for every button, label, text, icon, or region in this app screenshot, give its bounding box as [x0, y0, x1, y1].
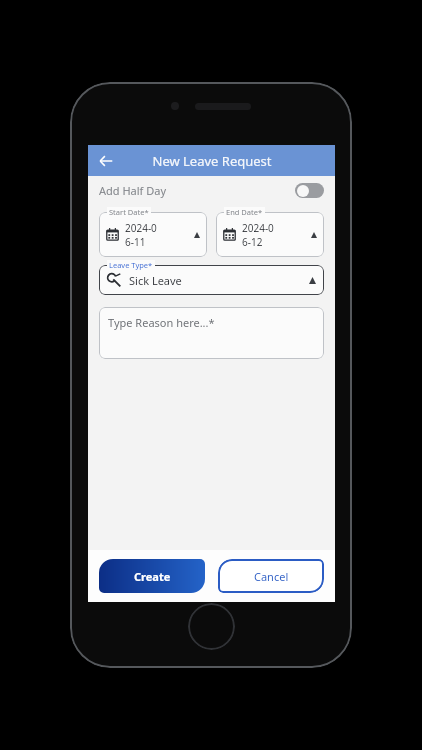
button[interactable]: 2024-0	[216, 212, 324, 257]
staticText: 2024-0	[125, 221, 157, 235]
staticText: 6-12	[242, 235, 263, 249]
button[interactable]: 2024-0	[99, 212, 207, 257]
staticText: Cancel	[254, 569, 289, 584]
staticText: Sick Leave	[129, 273, 182, 288]
staticText: Create	[134, 569, 171, 584]
staticText: Type Reason here...*	[108, 315, 215, 330]
button[interactable]: Create	[99, 559, 205, 593]
staticText: New Leave Request	[152, 152, 272, 170]
button[interactable]: Back	[92, 147, 120, 175]
staticText: Add Half Day	[99, 183, 167, 198]
staticText: 2024-0	[242, 221, 274, 235]
button[interactable]: Type Reason here...*	[99, 307, 324, 359]
staticText: Start Date*	[109, 207, 149, 217]
other: Home	[188, 603, 235, 650]
button[interactable]: Sick Leave	[99, 265, 324, 295]
staticText: End Date*	[226, 207, 263, 217]
staticText: Leave Type*	[109, 260, 153, 270]
staticText: 6-11	[125, 235, 146, 249]
button[interactable]: Add Half Day	[88, 176, 335, 204]
button[interactable]: Cancel	[218, 559, 324, 593]
